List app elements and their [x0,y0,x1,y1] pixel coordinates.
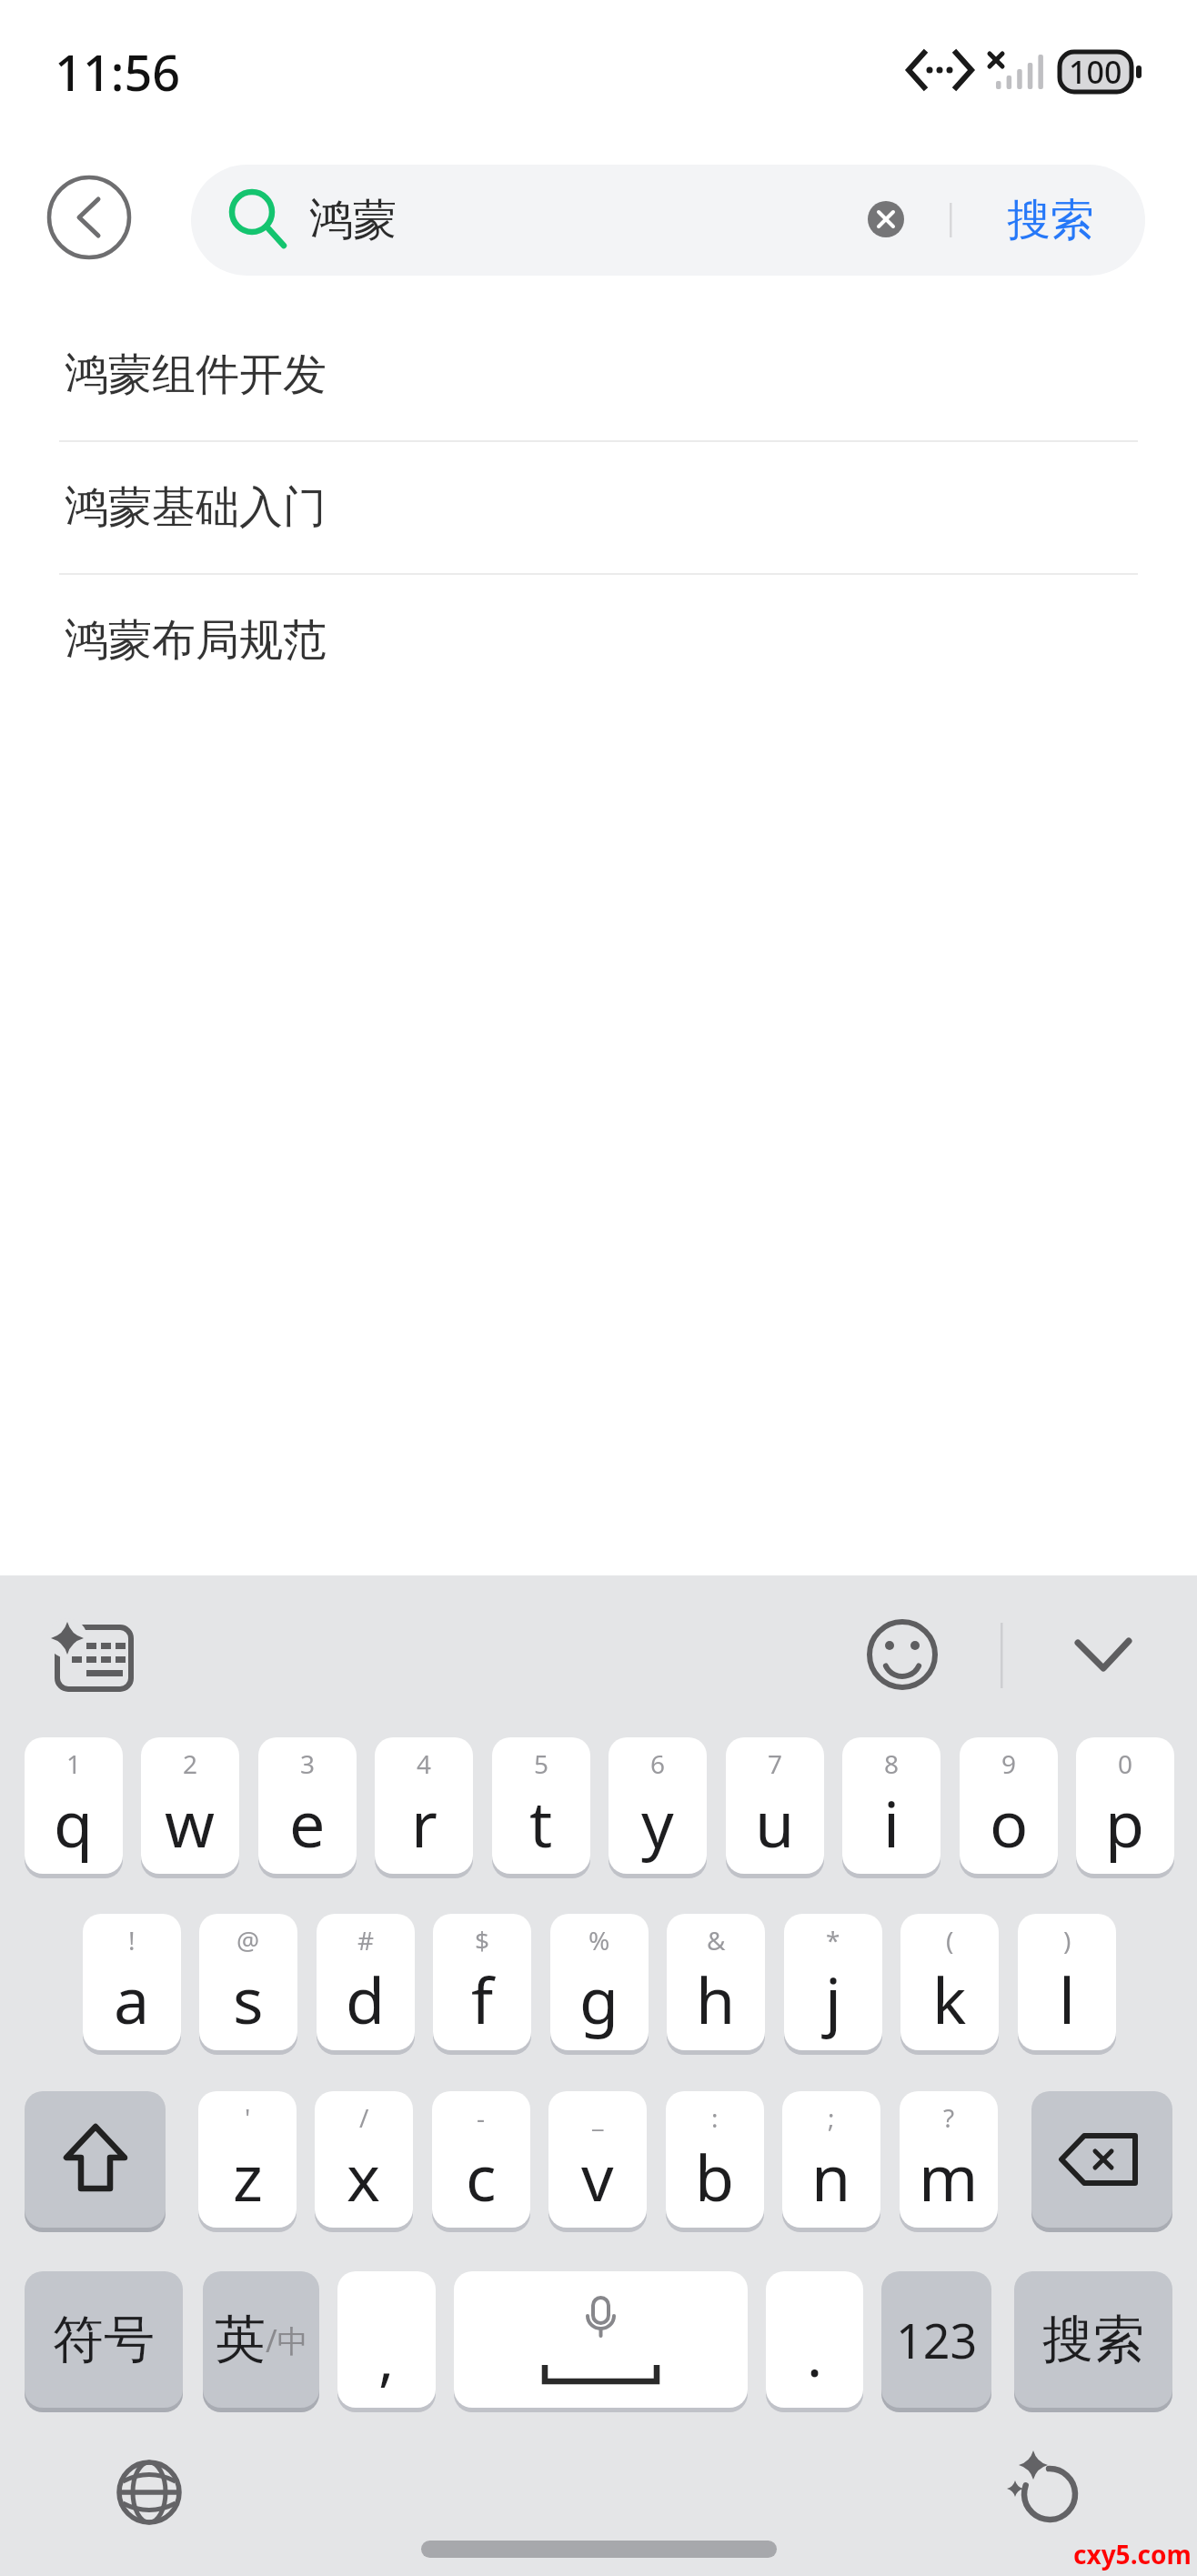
button[interactable]: . [766,2271,863,2408]
button[interactable]: 7 [726,1737,824,1874]
staticText: 7 [768,1746,783,1781]
staticText: # [357,1923,375,1957]
staticText: ' [245,2100,251,2135]
button[interactable]: 4 [375,1737,473,1874]
button[interactable] [45,1615,146,1701]
staticText: 4 [417,1746,432,1781]
staticText: & [707,1923,726,1957]
staticText: 英 [215,2308,266,2372]
staticText: 搜索 [1007,193,1094,247]
button[interactable]: , [337,2271,436,2408]
button[interactable]: 5 [492,1737,590,1874]
staticText: k [932,1956,967,2042]
staticText: % [588,1923,610,1957]
button[interactable] [191,165,1145,276]
staticText: j [825,1956,842,2042]
staticText: ! [128,1923,136,1957]
staticText: g [579,1956,619,2042]
staticText: / [359,2100,369,2135]
button[interactable]: $ [433,1914,531,2050]
staticText: q [54,1779,94,1866]
button[interactable]: ( [900,1914,999,2050]
staticText: /中 [266,2319,308,2361]
button[interactable]: - [432,2091,530,2228]
button[interactable]: 3 [258,1737,357,1874]
staticText: 搜索 [1042,2308,1144,2372]
button[interactable]: 1 [25,1737,123,1874]
staticText: . [807,2315,823,2394]
button[interactable]: 123 [881,2271,991,2408]
staticText: 鸿蒙 [309,193,397,247]
button[interactable]: 2 [141,1737,239,1874]
button[interactable]: _ [548,2091,647,2228]
staticText: s [233,1956,264,2042]
staticText: 3 [300,1746,316,1781]
staticText: 5 [534,1746,549,1781]
staticText: u [755,1779,795,1866]
staticText: 8 [884,1746,900,1781]
staticText: d [346,1956,386,2042]
button[interactable] [1060,1613,1147,1696]
staticText: h [696,1956,736,2042]
button[interactable] [454,2271,748,2408]
staticText: ? [943,2100,955,2135]
button[interactable] [868,201,904,237]
staticText: 9 [1001,1746,1017,1781]
button[interactable] [25,2091,166,2228]
staticText: n [811,2133,851,2219]
button[interactable] [1008,2452,1090,2534]
button[interactable]: @ [199,1914,297,2050]
staticText: 0 [1118,1746,1133,1781]
staticText: e [289,1779,326,1866]
button[interactable]: 6 [609,1737,707,1874]
button[interactable]: ; [782,2091,880,2228]
button[interactable]: 8 [842,1737,940,1874]
button[interactable]: 搜索 [1014,2271,1172,2408]
staticText: l [1059,1956,1076,2042]
button[interactable]: ! [83,1914,181,2050]
staticText: cxy5.com [1073,2537,1192,2571]
staticText: - [477,2100,486,2135]
staticText: f [471,1956,494,2042]
staticText: x [347,2133,381,2219]
button[interactable]: # [317,1914,415,2050]
button[interactable]: 鸿蒙基础入门 [0,441,1197,574]
button[interactable]: ' [198,2091,297,2228]
button[interactable]: & [667,1914,765,2050]
button[interactable]: 0 [1076,1737,1174,1874]
button[interactable]: : [666,2091,764,2228]
button[interactable] [49,177,129,257]
staticText: ; [828,2100,835,2135]
button[interactable]: 鸿蒙布局规范 [0,574,1197,707]
button[interactable]: ? [900,2091,998,2228]
button[interactable]: * [784,1914,882,2050]
button[interactable]: 搜索 [982,177,1119,263]
staticText: a [114,1956,150,2042]
staticText: c [466,2133,497,2219]
staticText: 鸿蒙布局规范 [65,613,327,668]
staticText: , [378,2319,395,2398]
button[interactable]: / [315,2091,413,2228]
staticText: i [883,1779,900,1866]
staticText: w [165,1779,216,1866]
button[interactable]: % [550,1914,649,2050]
staticText: * [826,1923,840,1957]
button[interactable]: 英 [203,2271,319,2408]
staticText: $ [475,1923,490,1957]
staticText: 鸿蒙组件开发 [65,347,327,402]
staticText: @ [236,1923,260,1957]
button[interactable] [1031,2091,1172,2228]
staticText: 6 [650,1746,666,1781]
button[interactable]: ) [1018,1914,1116,2050]
staticText: 鸿蒙基础入门 [65,480,327,535]
button[interactable] [109,2452,191,2534]
staticText: m [919,2133,979,2219]
button[interactable]: 9 [960,1737,1058,1874]
staticText: : [711,2100,719,2135]
button[interactable] [860,1613,944,1696]
button[interactable]: 符号 [25,2271,183,2408]
staticText: t [529,1779,553,1866]
staticText: 符号 [53,2308,155,2372]
button[interactable]: 鸿蒙组件开发 [0,308,1197,441]
staticText: 2 [183,1746,198,1781]
